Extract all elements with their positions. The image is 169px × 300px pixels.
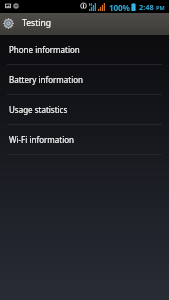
- button[interactable]: Usage statistics: [0, 95, 169, 125]
- staticText: Testing: [22, 17, 52, 29]
- button[interactable]: App icon: [0, 13, 169, 35]
- staticText: Usage statistics: [9, 104, 68, 115]
- staticText: Phone information: [9, 44, 80, 55]
- other: App icon: [3, 18, 14, 29]
- button[interactable]: Wi-Fi information: [0, 125, 169, 155]
- staticText: 100%: [109, 2, 130, 13]
- staticText: Battery information: [9, 74, 84, 85]
- staticText: PM: [156, 4, 165, 11]
- staticText: 2:48: [139, 2, 154, 12]
- button[interactable]: Battery information: [0, 65, 169, 95]
- button[interactable]: Phone information: [0, 35, 169, 65]
- staticText: Wi-Fi information: [9, 134, 74, 145]
